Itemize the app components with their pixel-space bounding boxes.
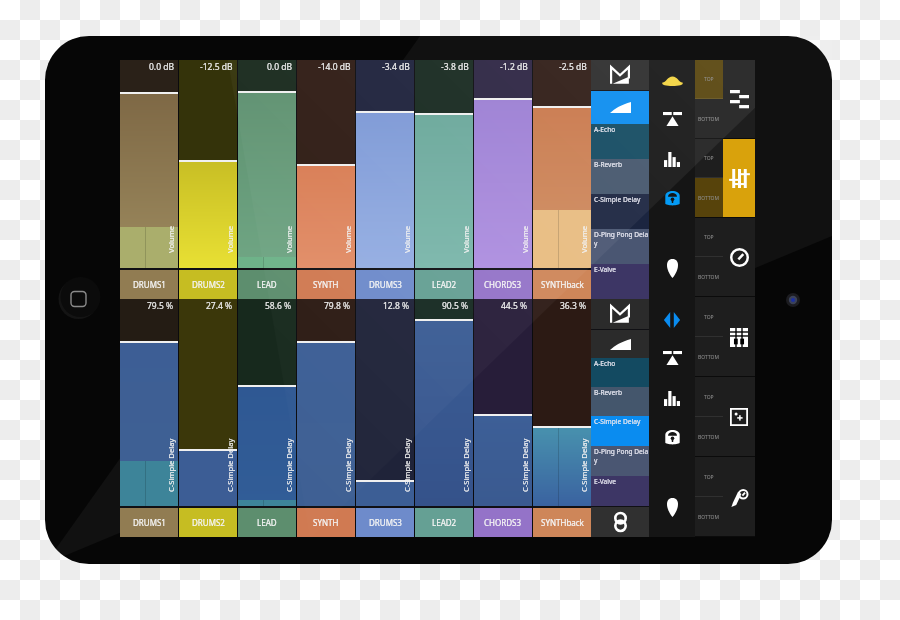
staticText: Volume [520,64,530,253]
button[interactable]: TOP [695,60,723,99]
button[interactable]: Lock [649,178,695,216]
staticText: Volume [166,64,176,253]
button[interactable]: DRUMS2 [179,508,237,537]
button[interactable]: Pan [649,62,695,100]
button[interactable]: DRUMS3 [356,270,414,299]
button[interactable]: E-Valve [591,476,649,506]
button[interactable]: BOTTOM [695,178,723,218]
button[interactable]: DRUMS3 [356,508,414,537]
button[interactable]: Arrange [723,60,755,139]
staticText: B-Reverb [594,160,622,169]
button[interactable]: TOP [695,139,723,178]
button[interactable]: LEAD2 [415,270,473,299]
button[interactable]: More options [591,507,649,537]
button[interactable]: TOP [695,218,723,257]
staticText: TOP [704,234,714,241]
button[interactable]: Keyboard [723,297,755,377]
staticText: BOTTOM [698,116,720,123]
button[interactable]: 36.3 % [533,299,591,537]
button[interactable]: -12.5 dB [179,60,237,299]
button[interactable]: -14.0 dB [297,60,355,299]
button[interactable]: CHORDS3 [474,270,532,299]
button[interactable]: A-Echo [591,124,649,159]
staticText: DRUMS3 [369,279,402,290]
button[interactable]: LEAD [238,508,296,537]
button[interactable]: TOP [695,297,723,337]
button[interactable]: TOP [695,377,723,417]
staticText: SYNTHback [541,279,584,290]
button[interactable]: Mixer [723,139,755,218]
button[interactable]: Volume fader [591,91,649,124]
button[interactable]: C-Simple Delay [591,194,649,229]
button[interactable]: Mixer channel [591,60,649,90]
button[interactable]: BOTTOM [695,257,723,297]
button[interactable]: 0.0 dB [120,60,178,299]
staticText: -1.2 dB [500,61,528,73]
staticText: C-Simple Delay [594,195,641,204]
button[interactable]: B-Reverb [591,387,649,416]
staticText: 12.8 % [383,300,410,312]
button[interactable]: 44.5 % [474,299,532,537]
button[interactable]: C-Simple Delay [591,416,649,446]
staticText: BOTTOM [698,195,720,202]
staticText: 90.5 % [442,300,469,312]
button[interactable]: Pads [723,377,755,457]
button[interactable]: DRUMS1 [120,508,178,537]
button[interactable]: D-Ping Pong Dela y [591,229,649,264]
button[interactable]: BOTTOM [695,497,723,537]
button[interactable]: -3.4 dB [356,60,414,299]
button[interactable]: D-Ping Pong Dela y [591,446,649,476]
staticText: 44.5 % [501,300,528,312]
button[interactable]: CHORDS3 [474,508,532,537]
button[interactable]: Marker [649,488,695,526]
staticText: D-Ping Pong Dela y [594,447,649,465]
button[interactable]: Automation [723,457,755,537]
button[interactable]: B-Reverb [591,159,649,194]
staticText: C-Simple Delay [402,303,412,492]
button[interactable]: SYNTHback [533,508,591,537]
button[interactable]: E-Valve [591,264,649,299]
button[interactable]: Levels [649,140,695,178]
button[interactable]: 90.5 % [415,299,473,537]
button[interactable]: Collapse [649,100,695,138]
button[interactable]: Collapse [649,339,695,377]
button[interactable]: -1.2 dB [474,60,532,299]
staticText: LEAD [257,517,277,528]
button[interactable]: Volume fader [591,330,649,358]
button[interactable]: 58.6 % [238,299,296,537]
button[interactable]: 27.4 % [179,299,237,537]
button[interactable]: 79.8 % [297,299,355,537]
button[interactable]: 0.0 dB [238,60,296,299]
button[interactable]: -2.5 dB [533,60,591,299]
button[interactable]: LEAD [238,270,296,299]
button[interactable]: Knob [723,218,755,297]
button[interactable]: Mixer channel [591,299,649,329]
button[interactable]: BOTTOM [695,337,723,377]
staticText: C-Simple Delay [461,303,471,492]
staticText: LEAD [257,279,277,290]
button[interactable]: Levels [649,379,695,417]
button[interactable]: SYNTH [297,270,355,299]
button[interactable]: Pan [649,301,695,339]
button[interactable]: Marker [649,249,695,287]
button[interactable]: LEAD2 [415,508,473,537]
staticText: C-Simple Delay [520,303,530,492]
button[interactable]: 79.5 % [120,299,178,537]
staticText: BOTTOM [698,434,720,441]
button[interactable]: DRUMS1 [120,270,178,299]
button[interactable]: BOTTOM [695,99,723,139]
button[interactable]: 12.8 % [356,299,414,537]
staticText: C-Simple Delay [343,303,353,492]
staticText: BOTTOM [698,274,720,281]
button[interactable]: BOTTOM [695,417,723,457]
button[interactable]: DRUMS2 [179,270,237,299]
button[interactable]: -3.8 dB [415,60,473,299]
staticText: C-Simple Delay [166,303,176,492]
staticText: DRUMS3 [369,517,402,528]
staticText: 79.5 % [147,300,174,312]
button[interactable]: A-Echo [591,358,649,387]
button[interactable]: TOP [695,457,723,497]
button[interactable]: SYNTH [297,508,355,537]
button[interactable]: Lock [649,417,695,455]
button[interactable]: SYNTHback [533,270,591,299]
